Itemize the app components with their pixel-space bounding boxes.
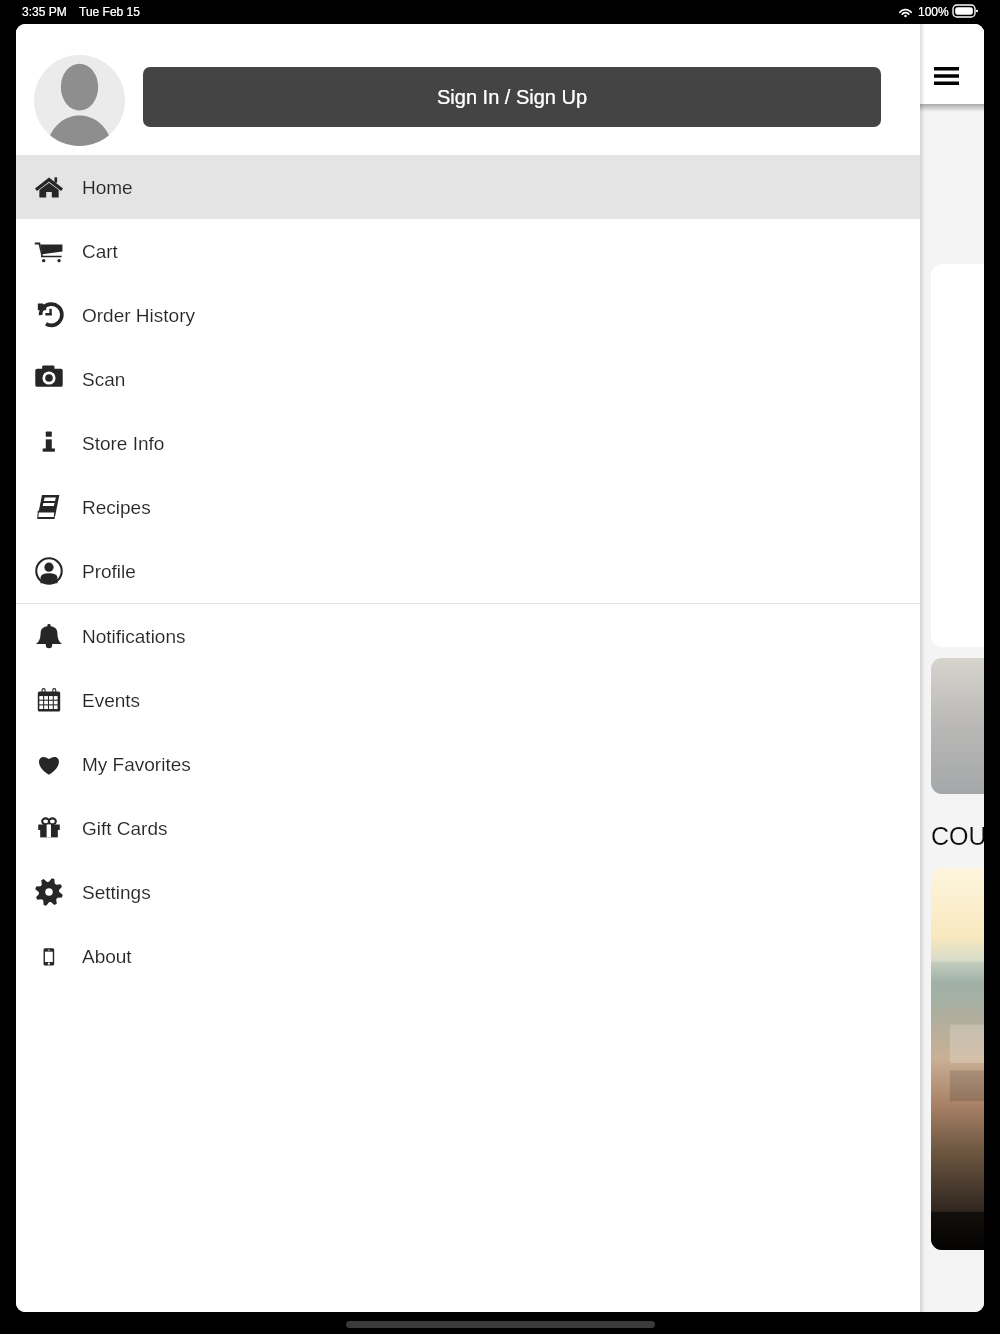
button[interactable]: Open navigation menu <box>922 52 970 100</box>
button[interactable]: About <box>16 924 920 988</box>
staticText: Gift Cards <box>82 818 168 839</box>
staticText: Cart <box>82 241 118 262</box>
staticText: Profile <box>82 561 136 582</box>
staticText: Sign In / Sign Up <box>437 86 588 108</box>
button[interactable]: Scan <box>16 347 920 411</box>
button[interactable]: Cart <box>16 219 920 283</box>
staticText: My Favorites <box>82 754 191 775</box>
staticText: Notifications <box>82 626 186 647</box>
button[interactable]: Gift Cards <box>16 796 920 860</box>
staticText: 3:35 PM <box>22 5 67 18</box>
button[interactable]: My Favorites <box>16 732 920 796</box>
staticText: Settings <box>82 882 151 903</box>
button[interactable]: Recipes <box>16 475 920 539</box>
button[interactable]: Profile picture <box>34 55 125 146</box>
staticText: COUPONS <box>931 822 984 850</box>
staticText: Tue Feb 15 <box>79 5 140 18</box>
staticText: Events <box>82 690 141 711</box>
button[interactable]: Home <box>16 155 920 219</box>
staticText: 100% <box>918 5 949 18</box>
staticText: Store Info <box>82 433 165 454</box>
button[interactable]: Sign In / Sign Up <box>143 67 881 127</box>
button[interactable]: Order History <box>16 283 920 347</box>
button[interactable]: Events <box>16 668 920 732</box>
button[interactable]: Store Info <box>16 411 920 475</box>
staticText: Recipes <box>82 497 151 518</box>
button[interactable]: Notifications <box>16 604 920 668</box>
button[interactable]: Settings <box>16 860 920 924</box>
staticText: Scan <box>82 369 126 390</box>
staticText: About <box>82 946 132 967</box>
staticText: Order History <box>82 305 195 326</box>
staticText: Home <box>82 177 133 198</box>
button[interactable]: Profile <box>16 539 920 603</box>
